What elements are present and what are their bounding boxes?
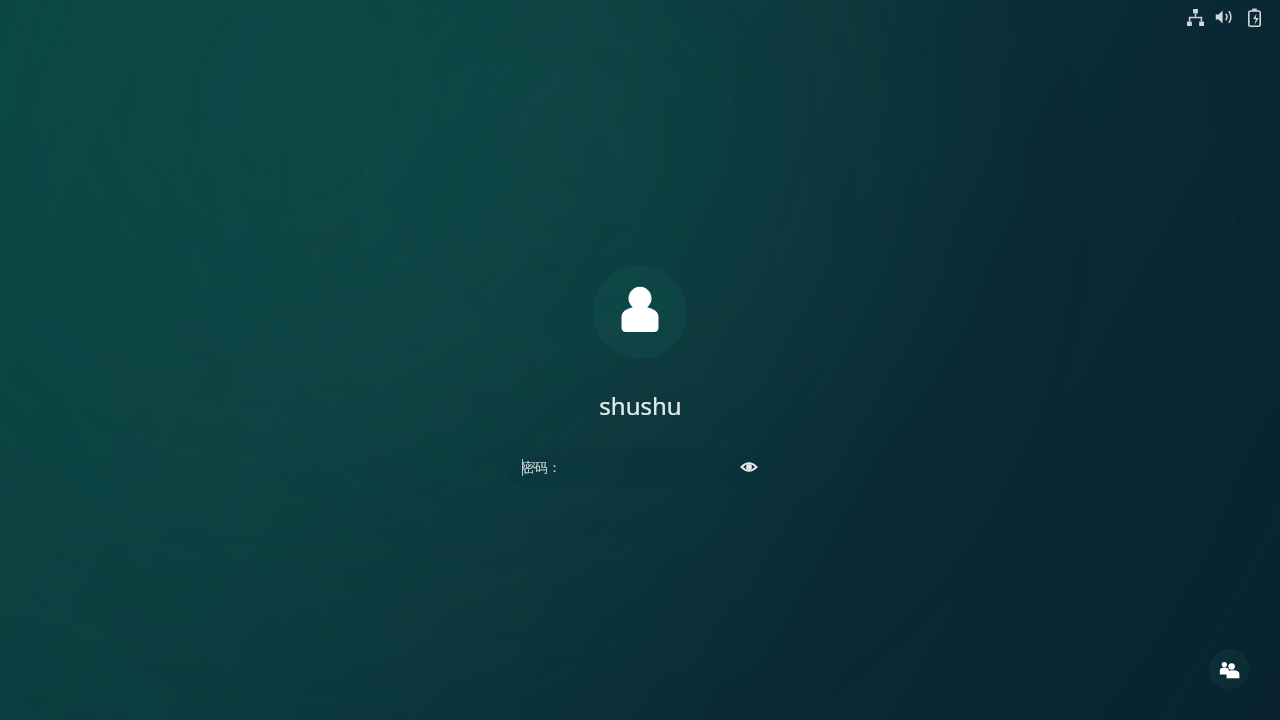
button[interactable]: Battery charging: [1242, 5, 1266, 29]
staticText: shushu: [599, 389, 682, 422]
staticText: 密码：: [522, 459, 561, 475]
button[interactable]: Volume: [1212, 5, 1236, 29]
button[interactable]: 密码：: [510, 449, 770, 485]
button[interactable]: User avatar: [593, 265, 687, 359]
button[interactable]: Switch user: [1209, 649, 1249, 689]
button[interactable]: Wired network: [1183, 5, 1207, 29]
button[interactable]: Show password: [737, 455, 761, 479]
